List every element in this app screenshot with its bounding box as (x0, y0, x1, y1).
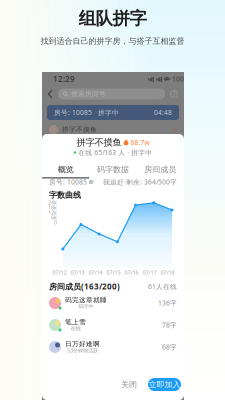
staticText: 组队拼字 (78, 8, 146, 29)
staticText: 关闭 (121, 380, 137, 389)
staticText: 07/12 (52, 269, 66, 276)
staticText: 07/18 (160, 269, 174, 276)
button[interactable]: 关闭 (118, 378, 140, 391)
staticText: 码字数据 (97, 165, 129, 174)
staticText: 18k (48, 204, 57, 211)
staticText: 概览 (58, 165, 74, 174)
staticText: 立即加入 (148, 380, 180, 389)
staticText: 78字 (162, 321, 177, 329)
staticText: 24k (48, 199, 57, 206)
staticText: 房间成员(163/200) (49, 281, 120, 292)
button[interactable]: 笔上雪 (42, 314, 184, 336)
button[interactable]: 房间成员 (137, 161, 184, 174)
staticText: 码完这章就睡 (65, 296, 107, 304)
staticText: 字数曲线 (49, 190, 81, 200)
staticText: 日万好难啊 (65, 340, 100, 348)
button[interactable]: 码完这章就睡 (42, 292, 184, 314)
staticText: 笔上雪 (65, 318, 86, 326)
button[interactable]: 码字数据 (89, 161, 137, 174)
staticText: 07/16 (124, 269, 138, 276)
staticText: 61人在线 (148, 282, 177, 291)
button[interactable]: 日万好难啊 (42, 336, 184, 358)
staticText: 68字 (162, 343, 177, 351)
staticText: 100 (172, 75, 184, 83)
staticText: 在线 (70, 325, 80, 332)
staticText: 12:29 (53, 74, 75, 84)
button[interactable]: 概览 (42, 161, 89, 174)
staticText: 6k (51, 214, 57, 221)
button[interactable]: 立即加入 (148, 378, 181, 391)
staticText: 0 (54, 219, 57, 226)
staticText: 12k (48, 209, 57, 216)
staticText: 房号: 10085 拼字中 (54, 108, 119, 117)
staticText: 搜索房间号 (71, 90, 106, 98)
staticText: 07/13 (70, 269, 84, 276)
staticText: 136字 (158, 299, 177, 307)
staticText: 07/14 (88, 269, 102, 276)
staticText: 房间成员 (144, 165, 176, 174)
staticText: 找到适合自己的拼字房，与搭子互相监督 (40, 36, 184, 46)
staticText: 拼字不摸鱼 (62, 125, 97, 134)
staticText: 拼字不摸鱼 (76, 137, 121, 148)
staticText: 07/15 (106, 269, 120, 276)
staticText: 07/17 (142, 269, 156, 276)
staticText: 68.7w (130, 138, 149, 147)
staticText: 我追赶·剩余: 364/500字 (103, 178, 177, 186)
staticText: ? (172, 90, 175, 98)
staticText: 53分钟前活跃 (67, 347, 98, 354)
staticText: 04:48 (154, 108, 172, 117)
staticText: 在线 65/163 人 · 拼字中 (78, 148, 152, 157)
staticText: 房号: 10085 (49, 178, 87, 186)
staticText: 码字中 (78, 303, 93, 310)
